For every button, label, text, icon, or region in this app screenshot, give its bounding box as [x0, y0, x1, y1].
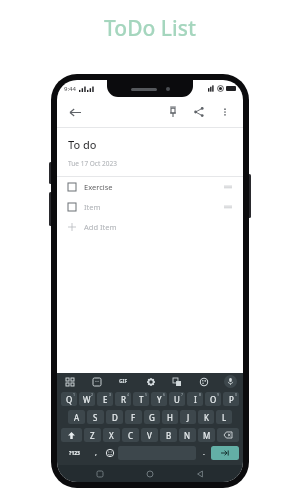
staticText: 9 [217, 392, 220, 397]
button[interactable]: Backspace [217, 428, 239, 442]
staticText: R [121, 394, 126, 405]
staticText: 9:44 [64, 85, 76, 93]
staticText: 4 [127, 392, 130, 397]
staticText: . [203, 448, 205, 458]
staticText: C [128, 430, 134, 441]
staticText: A [74, 412, 80, 423]
button[interactable]: O [205, 392, 221, 406]
staticText: K [204, 412, 209, 423]
staticText: GIF [119, 378, 128, 385]
staticText: To do [68, 137, 97, 152]
button[interactable]: . [197, 444, 210, 462]
staticText: B [166, 430, 172, 441]
staticText: T [139, 394, 144, 405]
button[interactable]: Q [61, 392, 77, 406]
button[interactable]: K [198, 410, 214, 424]
staticText: F [131, 412, 136, 423]
staticText: W [83, 394, 91, 405]
button[interactable]: , [89, 444, 102, 462]
button[interactable]: Item [57, 197, 243, 217]
button[interactable]: Pin [164, 103, 182, 121]
staticText: S [93, 412, 98, 423]
staticText: Y [157, 394, 162, 405]
button[interactable]: E [97, 392, 113, 406]
staticText: 1 [73, 392, 76, 397]
button[interactable]: Recents [93, 467, 107, 481]
button[interactable]: Emoji [102, 444, 117, 462]
button[interactable]: Add Item [57, 217, 243, 237]
button[interactable]: W [79, 392, 95, 406]
button[interactable]: I [187, 392, 203, 406]
button[interactable]: Settings [144, 375, 157, 388]
button[interactable]: Enter [211, 446, 239, 460]
staticText: N [184, 430, 191, 441]
button[interactable]: Translate [170, 375, 183, 388]
staticText: 8 [199, 392, 202, 397]
button[interactable]: Themes [197, 375, 210, 388]
staticText: , [95, 448, 97, 458]
staticText: 2 [91, 392, 94, 397]
button[interactable]: J [180, 410, 196, 424]
staticText: H [167, 412, 173, 423]
button[interactable]: P [223, 392, 239, 406]
staticText: G [149, 412, 155, 423]
button[interactable]: ?123 [61, 446, 88, 460]
staticText: P [229, 394, 234, 405]
staticText: O [210, 394, 217, 405]
staticText: ?123 [69, 450, 80, 457]
button[interactable]: D [106, 410, 123, 424]
button[interactable]: Y [151, 392, 167, 406]
staticText: 0 [235, 392, 238, 397]
button[interactable]: More options [216, 103, 234, 121]
button[interactable]: U [169, 392, 185, 406]
button[interactable]: V [141, 428, 158, 442]
button[interactable]: Z [84, 428, 101, 442]
button[interactable]: N [179, 428, 196, 442]
staticText: L [222, 412, 227, 423]
button[interactable]: S [87, 410, 104, 424]
button[interactable]: R [115, 392, 131, 406]
staticText: Exercise [84, 182, 113, 192]
staticText: E [103, 394, 108, 405]
staticText: 6 [163, 392, 166, 397]
staticText: Add Item [84, 222, 117, 232]
staticText: X [109, 430, 114, 441]
button[interactable]: GIF [117, 375, 130, 388]
staticText: Item [84, 202, 101, 212]
button[interactable]: T [133, 392, 149, 406]
staticText: U [174, 394, 180, 405]
button[interactable]: C [122, 428, 139, 442]
button[interactable]: X [103, 428, 120, 442]
button[interactable]: M [198, 428, 215, 442]
button[interactable]: G [144, 410, 160, 424]
staticText: Tue 17 Oct 2023 [68, 159, 117, 168]
staticText: J [187, 412, 190, 423]
staticText: M [203, 430, 211, 441]
button[interactable]: Stickers [90, 375, 103, 388]
button[interactable]: Home [143, 467, 157, 481]
staticText: 5 [145, 392, 148, 397]
staticText: Z [90, 430, 95, 441]
button[interactable]: Back [66, 103, 84, 121]
staticText: ToDo List [104, 14, 196, 43]
button[interactable]: Exercise [57, 177, 243, 197]
staticText: I [194, 394, 197, 405]
button[interactable]: A [68, 410, 85, 424]
button[interactable]: H [162, 410, 178, 424]
button[interactable]: L [216, 410, 232, 424]
button[interactable]: Back [193, 467, 207, 481]
staticText: 7 [181, 392, 184, 397]
button[interactable]: Voice input [224, 375, 237, 388]
button[interactable]: Share [190, 103, 208, 121]
staticText: 3 [109, 392, 112, 397]
staticText: Q [66, 394, 73, 405]
button[interactable]: B [160, 428, 177, 442]
button[interactable]: Shift [61, 428, 82, 442]
button[interactable]: F [125, 410, 142, 424]
staticText: D [112, 412, 118, 423]
button[interactable]: Clipboard [63, 375, 76, 388]
staticText: V [147, 430, 152, 441]
